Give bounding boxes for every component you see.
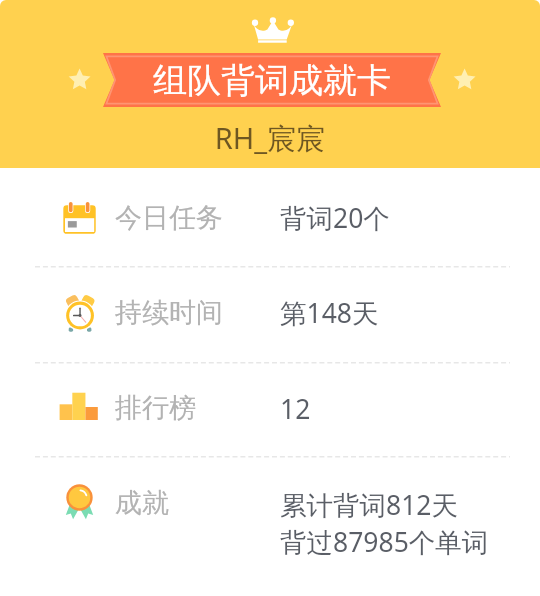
staticText: 第148天: [280, 295, 379, 331]
button[interactable]: [0, 456, 540, 550]
button[interactable]: [0, 361, 540, 455]
staticText: 成就: [115, 486, 169, 520]
staticText: 组队背词成就卡: [153, 59, 391, 102]
button[interactable]: [0, 266, 540, 360]
button[interactable]: [0, 171, 540, 265]
staticText: 今日任务: [115, 201, 223, 235]
staticText: RH_宸宸: [0, 118, 540, 158]
staticText: 背词20个: [280, 200, 390, 236]
staticText: 排行榜: [115, 391, 196, 425]
staticText: 持续时间: [115, 296, 223, 330]
staticText: 累计背词812天 背过87985个单词: [280, 487, 489, 559]
staticText: 12: [280, 391, 311, 427]
